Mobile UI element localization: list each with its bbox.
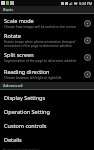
staticText: Rotate image when phone orientation chan… <box>4 40 81 48</box>
button[interactable]: Operation Setting <box>0 104 94 118</box>
staticText: 9:34 PM <box>79 1 93 6</box>
staticText: Scale mode <box>4 17 34 24</box>
staticText: Advanced <box>3 83 23 88</box>
staticText: Choose between left/right or right/left <box>4 76 62 80</box>
button[interactable]: Reading direction <box>0 65 94 82</box>
button[interactable]: Select option <box>83 19 91 27</box>
staticText: Rotate <box>4 32 21 39</box>
button[interactable]: Details <box>0 132 94 146</box>
staticText: Browse basic information <box>3 148 39 150</box>
staticText: Display Settings <box>4 94 46 101</box>
staticText: Split screen <box>4 51 34 58</box>
staticText: Choose how images will be scaled on the … <box>4 25 76 29</box>
button[interactable]: Select option <box>83 70 91 78</box>
staticText: Basic <box>3 7 14 12</box>
button[interactable]: Display Settings <box>0 90 94 104</box>
staticText: Reading direction <box>4 68 50 75</box>
staticText: Details <box>4 136 22 143</box>
staticText: Operation Setting <box>4 108 50 115</box>
button[interactable]: Custom controls <box>0 118 94 132</box>
button[interactable]: Rotate <box>0 31 94 48</box>
button[interactable]: Select option <box>83 53 91 61</box>
button[interactable]: Select option <box>83 36 91 44</box>
button[interactable]: Scale mode <box>0 14 94 31</box>
staticText: Segmentation of the page to determine wh… <box>4 59 77 63</box>
button[interactable]: Split screen <box>0 48 94 65</box>
staticText: Custom controls <box>4 122 47 129</box>
